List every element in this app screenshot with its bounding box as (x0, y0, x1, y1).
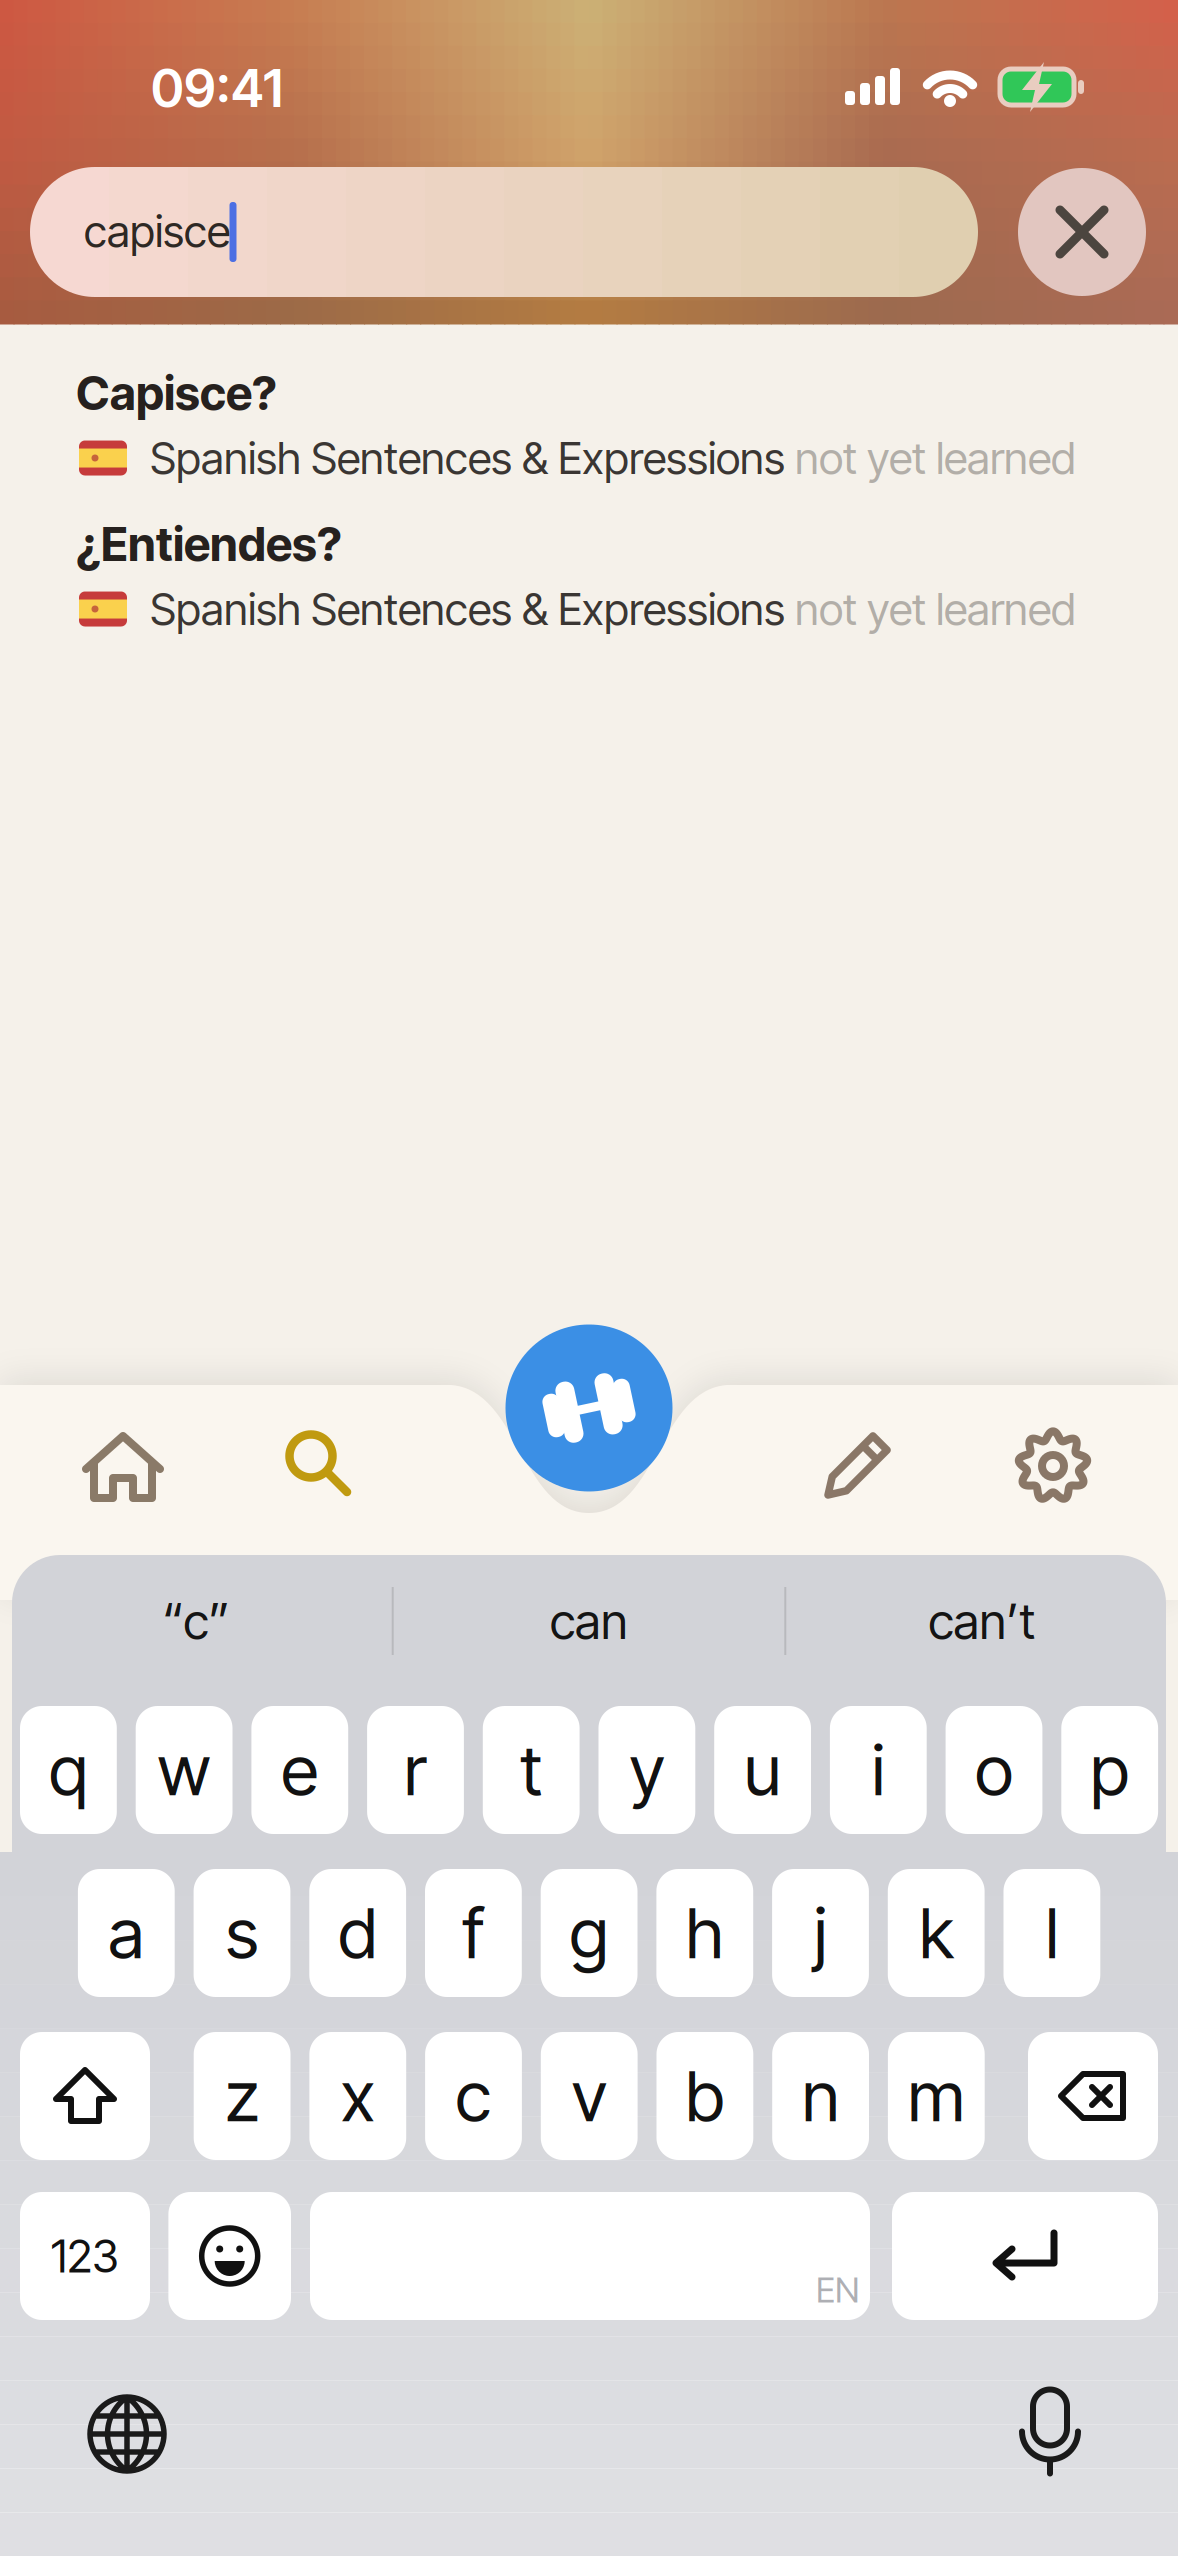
button[interactable]: Delete (1028, 2032, 1158, 2160)
staticText: not yet learned (785, 432, 1076, 484)
button[interactable]: s (194, 1869, 290, 1997)
staticText: a (108, 1892, 144, 1974)
staticText: EN (816, 2270, 860, 2310)
staticText: f (462, 1892, 484, 1974)
staticText: Capisce? (76, 365, 277, 421)
button[interactable]: h (656, 1869, 753, 1997)
button[interactable]: t (483, 1706, 580, 1834)
button[interactable]: Settings (1018, 1431, 1088, 1501)
button[interactable]: Return (892, 2192, 1158, 2320)
staticText: u (744, 1729, 781, 1811)
button[interactable]: d (309, 1869, 406, 1997)
staticText: “c” (162, 1592, 229, 1650)
button[interactable]: Home (86, 1432, 160, 1502)
button[interactable]: n (772, 2032, 869, 2160)
button[interactable]: Emoji (168, 2192, 291, 2320)
button[interactable]: i (830, 1706, 927, 1834)
button[interactable]: e (251, 1706, 348, 1834)
button[interactable]: r (367, 1706, 464, 1834)
button[interactable]: g (541, 1869, 637, 1997)
button[interactable]: a (78, 1869, 175, 1997)
button[interactable]: Shift (20, 2032, 150, 2160)
staticText: e (281, 1729, 318, 1811)
button[interactable]: b (656, 2032, 753, 2160)
staticText: x (341, 2055, 375, 2137)
button[interactable]: o (946, 1706, 1042, 1834)
staticText: Spanish Sentences & Expressions (150, 432, 785, 484)
staticText: capisce (84, 205, 230, 257)
button[interactable]: j (772, 1869, 869, 1997)
staticText: j (814, 1892, 827, 1974)
button[interactable]: 123 (20, 2192, 150, 2320)
staticText: n (802, 2055, 839, 2137)
staticText: d (338, 1892, 377, 1974)
staticText: q (49, 1729, 88, 1811)
button[interactable]: m (888, 2032, 985, 2160)
button[interactable]: z (194, 2032, 290, 2160)
staticText: can (550, 1592, 628, 1650)
staticText: s (225, 1892, 258, 1974)
button[interactable]: ¿Entiendes? (0, 496, 1178, 646)
staticText: 09:41 (151, 57, 283, 119)
button[interactable]: Search (287, 1434, 353, 1498)
staticText: z (225, 2055, 259, 2137)
staticText: not yet learned (785, 583, 1076, 635)
button[interactable]: can (399, 1571, 779, 1671)
staticText: o (975, 1729, 1013, 1811)
button[interactable]: can’t (792, 1571, 1172, 1671)
button[interactable]: Next keyboard (87, 2394, 167, 2474)
button[interactable]: Edit (824, 1433, 890, 1501)
staticText: ¿Entiendes? (76, 516, 342, 572)
staticText: b (685, 2055, 724, 2137)
staticText: v (572, 2055, 607, 2137)
button[interactable]: q (20, 1706, 117, 1834)
staticText: g (570, 1892, 609, 1974)
staticText: w (158, 1729, 211, 1811)
staticText: p (1090, 1729, 1129, 1811)
staticText: k (919, 1892, 953, 1974)
button[interactable]: Dictation (1022, 2389, 1078, 2474)
button[interactable]: Practice (505, 1324, 672, 1491)
staticText: 123 (51, 2229, 119, 2283)
staticText: t (520, 1729, 542, 1811)
staticText: l (1045, 1892, 1058, 1974)
button[interactable]: p (1061, 1706, 1158, 1834)
button[interactable]: c (425, 2032, 522, 2160)
staticText: c (455, 2055, 491, 2137)
button[interactable]: x (309, 2032, 406, 2160)
button[interactable]: f (425, 1869, 522, 1997)
button[interactable]: u (714, 1706, 811, 1834)
button[interactable]: l (1003, 1869, 1100, 1997)
button[interactable]: w (136, 1706, 232, 1834)
staticText: m (908, 2055, 965, 2137)
button[interactable]: y (598, 1706, 695, 1834)
staticText: Spanish Sentences & Expressions (150, 583, 785, 635)
button[interactable]: Space (310, 2192, 870, 2320)
staticText: can’t (928, 1592, 1035, 1650)
button[interactable]: “c” (6, 1571, 386, 1671)
button[interactable]: Capisce? (0, 345, 1178, 495)
staticText: i (872, 1729, 885, 1811)
staticText: h (686, 1892, 724, 1974)
button[interactable]: Clear search (1018, 168, 1146, 296)
staticText: r (404, 1729, 427, 1811)
staticText: y (629, 1729, 664, 1811)
button[interactable]: v (541, 2032, 638, 2160)
button[interactable]: k (888, 1869, 985, 1997)
